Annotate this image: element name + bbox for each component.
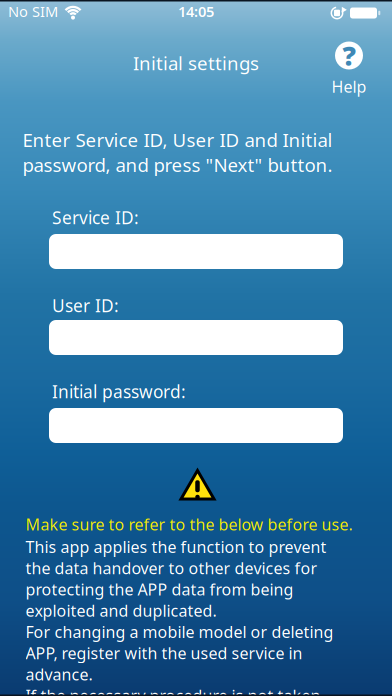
button[interactable]: Help	[331, 41, 366, 97]
staticText: No SIM	[8, 2, 58, 21]
staticText: 14:05	[178, 1, 214, 21]
button[interactable]: Initial password:	[49, 408, 343, 443]
button[interactable]: Service ID:	[49, 234, 343, 269]
staticText: Enter Service ID, User ID and Initial pa…	[22, 127, 332, 177]
button[interactable]: User ID:	[49, 320, 343, 355]
staticText: Help	[331, 76, 366, 97]
staticText: Service ID:	[52, 206, 139, 229]
staticText: This app applies the function to prevent…	[25, 536, 333, 696]
staticText: ?	[342, 38, 355, 73]
staticText: Make sure to refer to the below before u…	[25, 514, 352, 535]
staticText: Initial password:	[52, 380, 186, 403]
staticText: Initial settings	[133, 51, 259, 75]
staticText: User ID:	[52, 294, 119, 317]
